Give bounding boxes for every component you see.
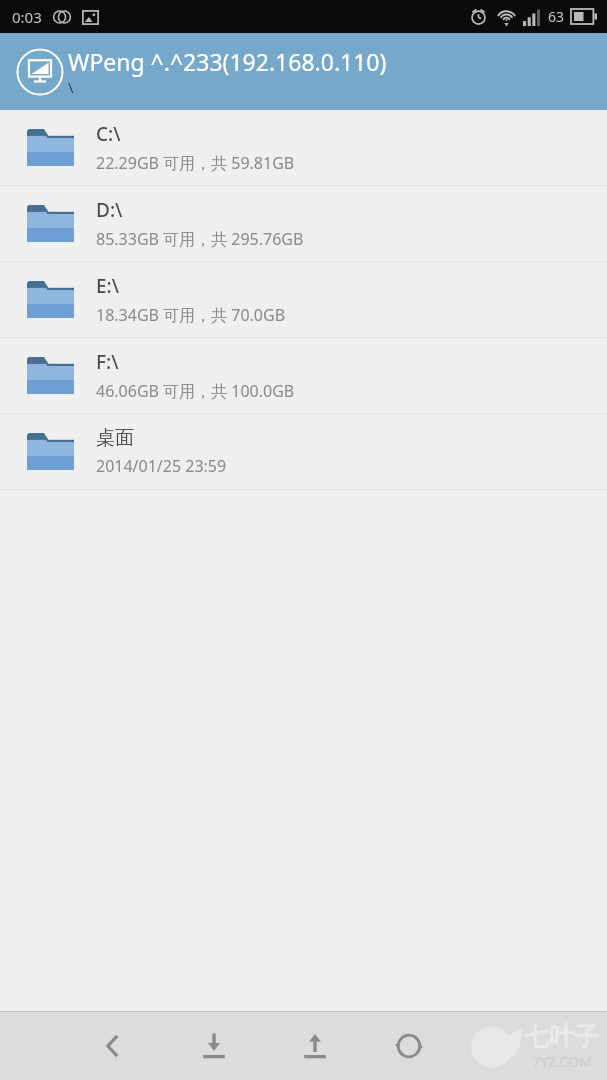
button[interactable]: D:\ <box>0 186 607 262</box>
button[interactable]: Refresh <box>393 1023 425 1069</box>
staticText: 85.33GB 可用，共 295.76GB <box>96 228 304 250</box>
staticText: C:\ <box>96 121 121 147</box>
button[interactable]: C:\ <box>0 110 607 186</box>
button[interactable]: Back <box>90 1023 136 1069</box>
staticText: 22.29GB 可用，共 59.81GB <box>96 152 295 174</box>
button[interactable]: 桌面 <box>0 414 607 490</box>
staticText: 46.06GB 可用，共 100.0GB <box>96 380 295 402</box>
staticText: E:\ <box>96 273 120 299</box>
button[interactable]: F:\ <box>0 338 607 414</box>
staticText: WPeng ^.^233(192.168.0.110) <box>68 46 387 77</box>
staticText: 0:03 <box>12 7 42 27</box>
button[interactable]: Download <box>191 1023 237 1069</box>
staticText: F:\ <box>96 349 119 375</box>
staticText: \ <box>68 77 74 97</box>
staticText: 7YZ.COM <box>532 1052 592 1071</box>
staticText: 18.34GB 可用，共 70.0GB <box>96 304 286 326</box>
button[interactable]: Upload <box>292 1023 338 1069</box>
button[interactable]: E:\ <box>0 262 607 338</box>
staticText: 63 <box>548 7 565 26</box>
staticText: 桌面 <box>96 426 134 450</box>
staticText: 七叶子 <box>524 1021 599 1052</box>
other: Host <box>16 48 64 96</box>
staticText: 2014/01/25 23:59 <box>96 455 227 477</box>
button[interactable]: Host <box>0 33 607 110</box>
staticText: D:\ <box>96 197 123 223</box>
